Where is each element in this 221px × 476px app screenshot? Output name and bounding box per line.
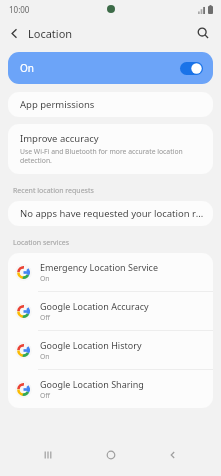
staticText: On xyxy=(20,61,34,75)
staticText: On xyxy=(40,352,50,361)
staticText: Location xyxy=(28,26,73,41)
staticText: Emergency Location Service xyxy=(40,261,159,273)
button[interactable]: Search xyxy=(189,19,217,47)
staticText: Recent location requests xyxy=(13,186,94,196)
staticText: No apps have requested your location rec… xyxy=(20,207,205,220)
staticText: Google Location History xyxy=(40,339,142,351)
staticText: Improve accuracy xyxy=(20,132,99,145)
button[interactable]: Google Location Sharing xyxy=(8,369,213,408)
staticText: Location services xyxy=(13,238,70,248)
staticText: Google Location Sharing xyxy=(40,378,144,390)
button[interactable]: Home xyxy=(96,440,126,470)
button[interactable]: Google Location Accuracy xyxy=(8,291,213,330)
staticText: Use Wi-Fi and Bluetooth for more accurat… xyxy=(20,147,201,165)
button[interactable]: Google Location History xyxy=(8,330,213,369)
button[interactable]: No apps have requested your location rec… xyxy=(8,201,213,226)
button[interactable]: Recent apps xyxy=(33,440,63,470)
staticText: Off xyxy=(40,313,50,322)
button[interactable]: On xyxy=(8,52,213,84)
button[interactable]: Back xyxy=(0,19,28,47)
staticText: Google Location Accuracy xyxy=(40,300,149,312)
button[interactable]: Improve accuracy xyxy=(8,124,213,174)
staticText: 10:00 xyxy=(9,4,30,15)
staticText: On xyxy=(40,274,50,283)
staticText: Off xyxy=(40,391,50,400)
staticText: App permissions xyxy=(20,98,95,111)
button[interactable]: App permissions xyxy=(8,92,213,117)
button[interactable]: Back xyxy=(158,440,188,470)
button[interactable]: Emergency Location Service xyxy=(8,253,213,291)
